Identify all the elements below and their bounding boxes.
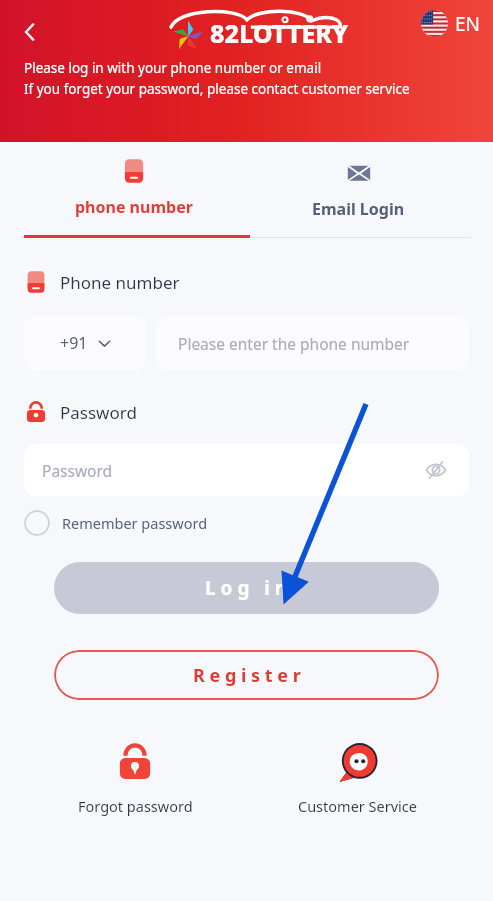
button[interactable]: phone number (22, 150, 246, 238)
staticText: Password (42, 460, 113, 481)
button[interactable]: Password (24, 444, 469, 496)
button[interactable]: Customer Service (246, 742, 469, 816)
staticText: Customer Service (298, 796, 417, 816)
staticText: Phone number (60, 271, 180, 294)
staticText: Forgot password (78, 796, 193, 816)
button[interactable]: Remember password (24, 510, 208, 536)
staticText: L o g i n (205, 575, 288, 601)
staticText: phone number (75, 196, 193, 218)
staticText: R e g i s t e r (193, 663, 301, 688)
staticText: Please log in with your phone number or … (24, 59, 322, 77)
button[interactable]: Forgot password (24, 742, 246, 816)
button[interactable]: +91 (24, 316, 146, 370)
staticText: Please enter the phone number (178, 333, 410, 354)
button[interactable]: Show password (421, 455, 451, 485)
staticText: 82LOTTERY (210, 16, 349, 50)
button[interactable]: EN (421, 10, 481, 37)
button[interactable]: L o g i n (54, 562, 439, 614)
staticText: Remember password (62, 513, 208, 533)
staticText: Password (60, 401, 137, 424)
button[interactable]: R e g i s t e r (54, 650, 439, 700)
staticText: If you forget your password, please cont… (24, 80, 410, 98)
staticText: +91 (60, 332, 88, 354)
button[interactable]: Please enter the phone number (156, 316, 469, 370)
staticText: EN (455, 11, 481, 37)
staticText: Email Login (312, 198, 405, 220)
button[interactable]: Email Login (246, 150, 471, 238)
button[interactable]: Back (10, 12, 50, 52)
